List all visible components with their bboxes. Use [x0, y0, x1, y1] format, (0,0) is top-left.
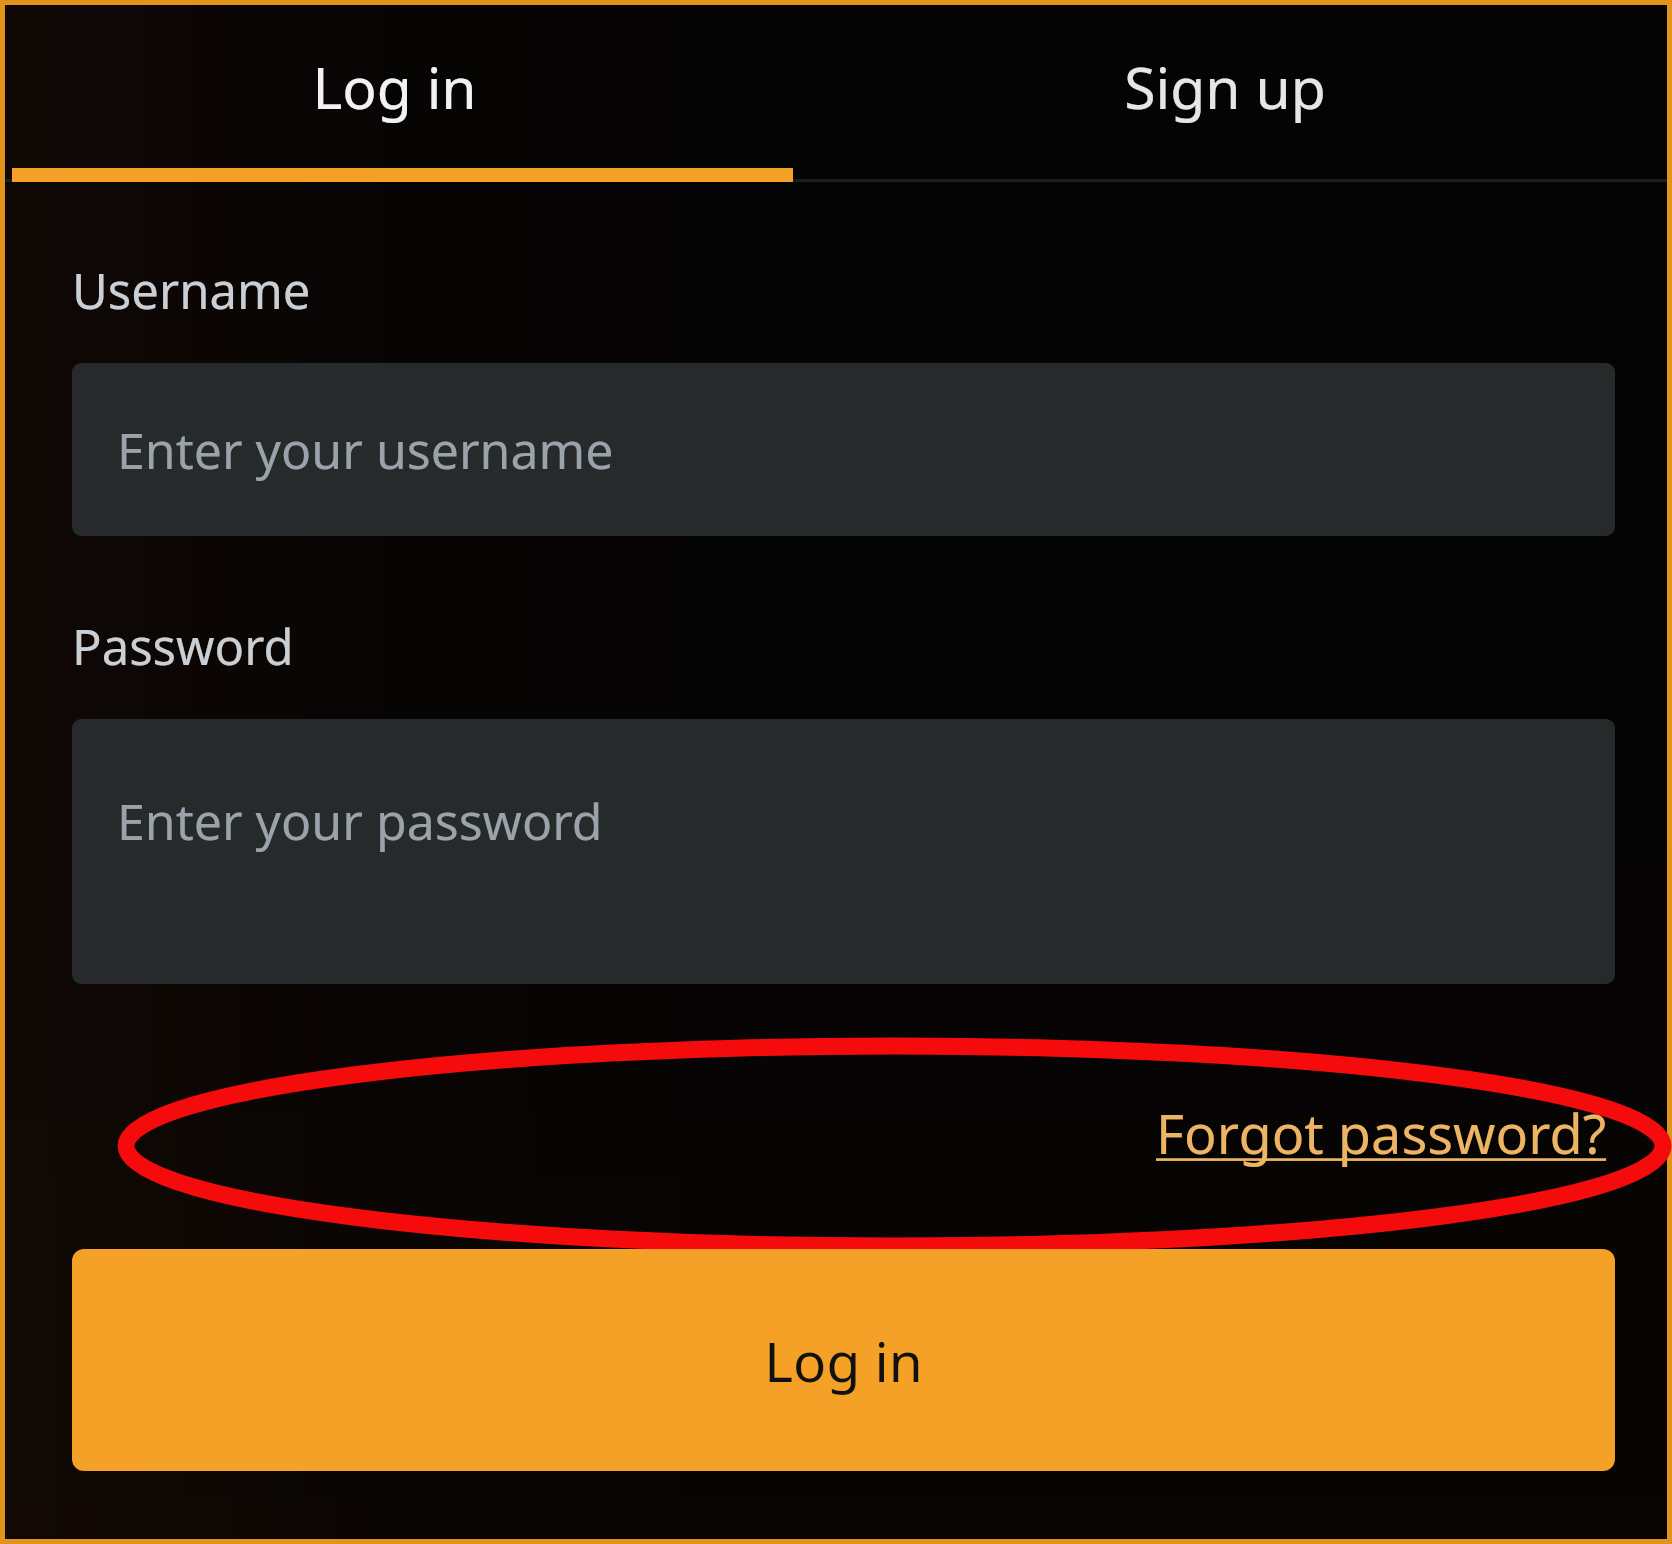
- staticText: Enter your password: [117, 787, 603, 855]
- staticText: Log in: [312, 48, 477, 126]
- staticText: Enter your username: [117, 416, 614, 484]
- button[interactable]: Enter your password: [72, 719, 1615, 984]
- staticText: Forgot password?: [1156, 1096, 1607, 1170]
- button[interactable]: Enter your username: [72, 363, 1615, 536]
- staticText: Username: [72, 257, 311, 324]
- button[interactable]: Log in: [5, 5, 783, 168]
- button[interactable]: Sign up: [783, 5, 1667, 168]
- staticText: Sign up: [1124, 48, 1326, 126]
- button[interactable]: Forgot password?: [1148, 1086, 1615, 1180]
- staticText: Log in: [764, 1323, 923, 1398]
- staticText: Password: [72, 613, 294, 680]
- button[interactable]: Log in: [72, 1249, 1615, 1471]
